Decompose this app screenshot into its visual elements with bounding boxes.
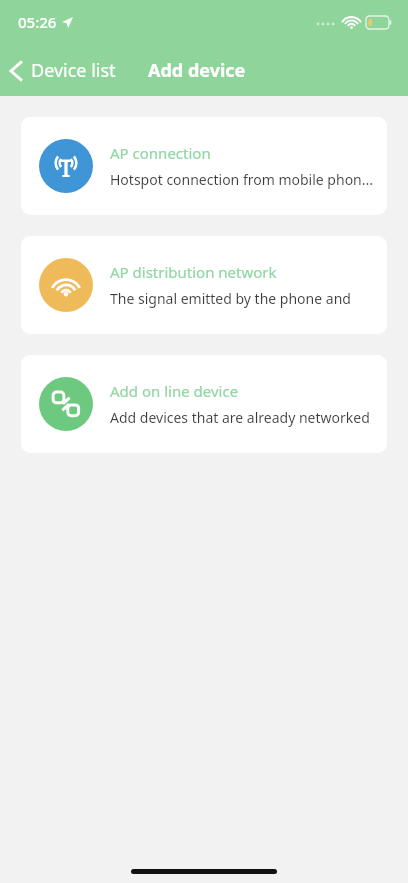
button[interactable]: Device list xyxy=(0,52,126,89)
staticText: Add on line device xyxy=(110,381,239,401)
staticText: AP distribution network xyxy=(110,262,277,282)
staticText: Add devices that are already networked xyxy=(110,408,370,427)
staticText: 05:26 xyxy=(18,12,57,32)
button[interactable]: AP connection xyxy=(21,117,387,215)
staticText: The signal emitted by the phone and devi… xyxy=(110,289,373,308)
staticText: Device list xyxy=(31,58,116,83)
staticText: Hotspot connection from mobile phon... xyxy=(110,170,373,189)
button[interactable]: Add on line device xyxy=(21,355,387,453)
staticText: AP connection xyxy=(110,143,211,163)
button[interactable]: AP distribution network xyxy=(21,236,387,334)
staticText: Add device xyxy=(148,58,246,83)
